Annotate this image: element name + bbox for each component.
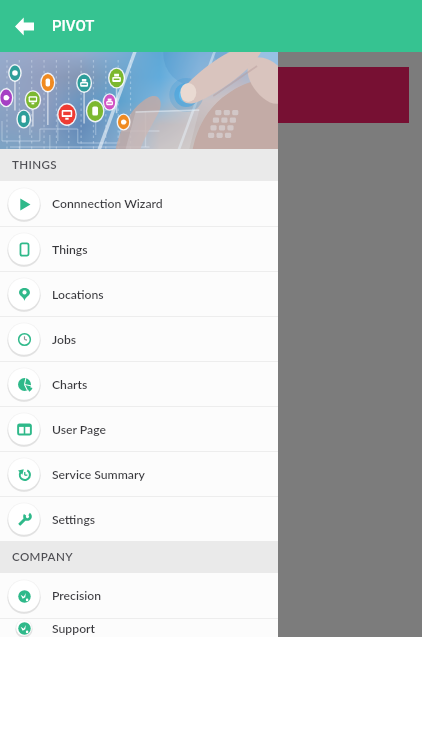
button[interactable]: Settings [0, 497, 278, 541]
staticText: Support [52, 621, 96, 636]
button[interactable]: Service Summary [0, 452, 278, 496]
button[interactable]: Jobs [0, 317, 278, 361]
staticText: Charts [52, 377, 88, 392]
staticText: Jobs [52, 332, 77, 347]
button[interactable]: Charts [0, 362, 278, 406]
staticText: Connnection Wizard [52, 196, 163, 211]
staticText: Locations [52, 287, 104, 302]
staticText: Precision [52, 588, 102, 603]
button[interactable]: Things [0, 227, 278, 271]
button[interactable]: Connnection Wizard [0, 181, 278, 226]
staticText: COMPANY [12, 550, 73, 564]
button[interactable]: Support [0, 619, 278, 637]
staticText: Settings [52, 512, 96, 527]
staticText: Things [52, 242, 88, 257]
button[interactable]: Back [0, 2, 48, 50]
staticText: PIVOT [52, 17, 95, 35]
staticText: Service Summary [52, 467, 145, 482]
button[interactable]: Locations [0, 272, 278, 316]
staticText: THINGS [12, 158, 57, 172]
button[interactable]: User Page [0, 407, 278, 451]
button[interactable]: Precision [0, 573, 278, 618]
staticText: User Page [52, 422, 106, 437]
